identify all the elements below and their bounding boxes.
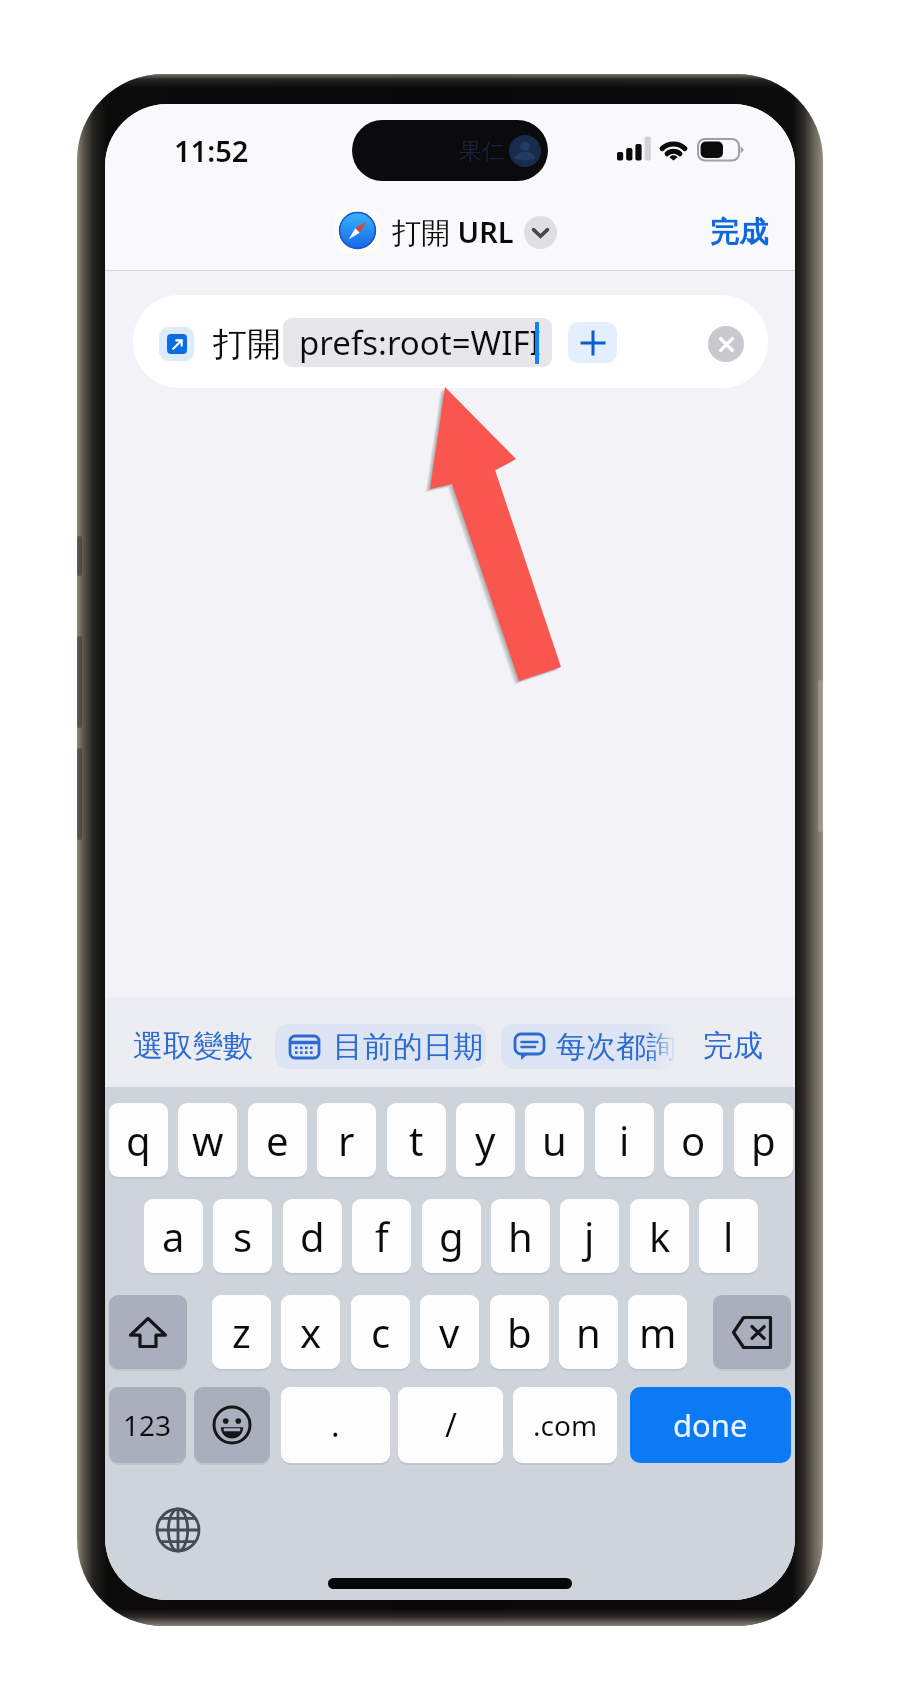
button[interactable]: f — [352, 1199, 411, 1273]
staticText: 11:52 — [174, 131, 249, 170]
button[interactable]: t — [387, 1103, 446, 1177]
button[interactable]: o — [664, 1103, 723, 1177]
staticText: r — [338, 1113, 355, 1167]
staticText: c — [371, 1305, 391, 1359]
button[interactable]: Emoji — [194, 1387, 270, 1463]
staticText: 目前的日期 — [333, 1028, 483, 1066]
button[interactable]: p — [734, 1103, 793, 1177]
button[interactable]: / — [398, 1387, 503, 1463]
staticText: .com — [533, 1406, 598, 1444]
button[interactable]: s — [213, 1199, 272, 1273]
button[interactable]: h — [491, 1199, 550, 1273]
staticText: 完成 — [703, 1027, 763, 1065]
button[interactable]: w — [178, 1103, 237, 1177]
button[interactable]: u — [525, 1103, 584, 1177]
staticText: o — [681, 1113, 706, 1167]
button[interactable]: Shift — [109, 1295, 187, 1369]
staticText: . — [331, 1403, 340, 1447]
staticText: e — [266, 1113, 289, 1167]
staticText: j — [584, 1209, 595, 1263]
button[interactable]: a — [144, 1199, 203, 1273]
staticText: m — [639, 1305, 677, 1359]
staticText: 打開 — [213, 323, 281, 366]
staticText: g — [439, 1209, 464, 1263]
button[interactable]: 完成 — [694, 1020, 772, 1072]
button[interactable]: b — [490, 1295, 549, 1369]
staticText: k — [649, 1209, 671, 1263]
staticText: 完成 — [710, 214, 768, 251]
button[interactable]: Clear text — [708, 326, 744, 362]
button[interactable]: . — [281, 1387, 390, 1463]
button[interactable]: g — [422, 1199, 481, 1273]
button[interactable]: j — [560, 1199, 619, 1273]
button[interactable]: 每次都詢問 — [501, 1024, 712, 1069]
staticText: l — [723, 1209, 734, 1263]
button[interactable]: r — [317, 1103, 376, 1177]
button[interactable]: l — [699, 1199, 758, 1273]
button[interactable]: d — [283, 1199, 342, 1273]
button[interactable]: .com — [513, 1387, 617, 1463]
staticText: u — [542, 1113, 567, 1167]
button[interactable]: e — [248, 1103, 307, 1177]
button[interactable]: Change keyboard — [154, 1506, 202, 1554]
staticText: s — [233, 1209, 253, 1263]
button[interactable]: m — [628, 1295, 687, 1369]
button[interactable]: q — [109, 1103, 168, 1177]
staticText: a — [162, 1209, 185, 1263]
button[interactable]: 123 — [109, 1387, 186, 1463]
staticText: n — [576, 1305, 601, 1359]
button[interactable]: Backspace — [713, 1295, 791, 1369]
button[interactable]: v — [420, 1295, 479, 1369]
button[interactable]: y — [456, 1103, 515, 1177]
staticText: y — [475, 1113, 496, 1167]
staticText: p — [751, 1113, 776, 1167]
button[interactable]: c — [351, 1295, 410, 1369]
staticText: h — [508, 1209, 533, 1263]
button[interactable]: 打開 — [133, 295, 768, 388]
staticText: done — [673, 1404, 748, 1446]
button[interactable]: Add variable — [568, 322, 617, 363]
staticText: / — [445, 1403, 457, 1447]
staticText: 打開 URL — [392, 212, 514, 252]
button[interactable]: z — [212, 1295, 271, 1369]
staticText: b — [507, 1305, 532, 1359]
staticText: 選取變數 — [133, 1027, 253, 1065]
staticText: 每次都詢問 — [556, 1028, 706, 1066]
button[interactable]: 目前的日期 — [275, 1024, 486, 1069]
staticText: 123 — [123, 1406, 172, 1444]
staticText: v — [439, 1305, 460, 1359]
staticText: z — [232, 1305, 251, 1359]
button[interactable]: 完成 — [704, 206, 774, 258]
button[interactable]: done — [630, 1387, 791, 1463]
button[interactable]: 選取變數 — [126, 1020, 259, 1072]
staticText: f — [375, 1209, 389, 1263]
button[interactable]: x — [281, 1295, 340, 1369]
staticText: q — [126, 1113, 151, 1167]
button[interactable]: i — [595, 1103, 654, 1177]
staticText: prefs:root=WIFI — [299, 320, 541, 365]
staticText: 果仁 — [459, 137, 505, 166]
staticText: i — [619, 1113, 630, 1167]
staticText: d — [300, 1209, 325, 1263]
staticText: w — [192, 1113, 224, 1167]
button[interactable]: Show more — [524, 216, 557, 249]
staticText: x — [300, 1305, 322, 1359]
button[interactable]: n — [559, 1295, 618, 1369]
staticText: t — [409, 1113, 424, 1167]
button[interactable]: k — [630, 1199, 689, 1273]
